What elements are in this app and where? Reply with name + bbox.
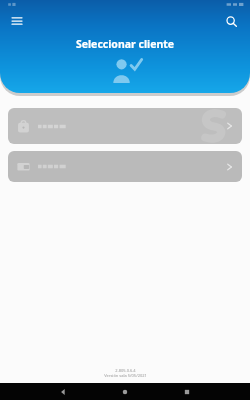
button[interactable]: Atrás: [32, 383, 94, 400]
button[interactable]: Recientes: [156, 383, 218, 400]
staticText: 2.805.0.6.4: [115, 368, 136, 373]
button[interactable]: [8, 108, 242, 144]
staticText: Seleccionar cliente: [0, 37, 250, 51]
button[interactable]: [8, 151, 242, 182]
button[interactable]: Buscar: [220, 10, 242, 32]
button[interactable]: Inicio: [94, 383, 156, 400]
button[interactable]: Menú: [6, 10, 28, 32]
staticText: Versión sala 5/05/2021: [104, 373, 147, 378]
